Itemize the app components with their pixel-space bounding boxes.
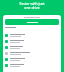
button[interactable] bbox=[5, 32, 59, 38]
button[interactable] bbox=[5, 44, 59, 50]
button[interactable] bbox=[5, 56, 59, 62]
button[interactable] bbox=[5, 50, 59, 56]
staticText: Faster with just one drive bbox=[19, 1, 45, 10]
button[interactable] bbox=[5, 62, 59, 68]
button[interactable] bbox=[5, 38, 59, 44]
button[interactable] bbox=[5, 19, 59, 25]
